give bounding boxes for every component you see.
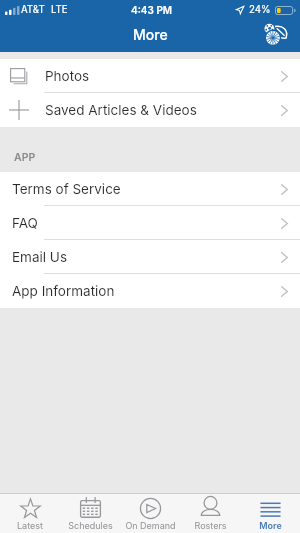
staticText: 4:43 PM xyxy=(131,4,173,16)
button[interactable]: App Information xyxy=(0,274,300,308)
staticText: APP xyxy=(14,151,36,164)
button[interactable]: Saved Articles & Videos xyxy=(0,93,300,127)
button[interactable]: FAQ xyxy=(0,206,300,240)
button[interactable]: Network logo xyxy=(264,23,288,45)
staticText: LTE xyxy=(51,4,68,16)
staticText: App Information xyxy=(12,283,115,299)
staticText: More xyxy=(259,520,282,531)
button[interactable]: Schedules xyxy=(60,494,120,533)
button[interactable]: Photos xyxy=(0,59,300,93)
staticText: FAQ xyxy=(12,215,38,231)
staticText: AT&T xyxy=(21,4,45,16)
staticText: Schedules xyxy=(68,520,113,531)
staticText: Email Us xyxy=(12,249,68,265)
staticText: Latest xyxy=(17,520,43,531)
staticText: Terms of Service xyxy=(12,181,121,197)
staticText: Photos xyxy=(45,68,90,84)
staticText: Saved Articles & Videos xyxy=(45,102,197,118)
button[interactable]: On Demand xyxy=(120,494,180,533)
button[interactable]: Email Us xyxy=(0,240,300,274)
button[interactable]: More xyxy=(240,494,300,533)
staticText: More xyxy=(133,26,168,43)
button[interactable]: Terms of Service xyxy=(0,172,300,206)
button[interactable]: Rosters xyxy=(180,494,240,533)
staticText: 24% xyxy=(249,4,271,16)
staticText: Rosters xyxy=(194,520,227,531)
button[interactable]: Latest xyxy=(0,494,60,533)
staticText: On Demand xyxy=(125,520,176,531)
